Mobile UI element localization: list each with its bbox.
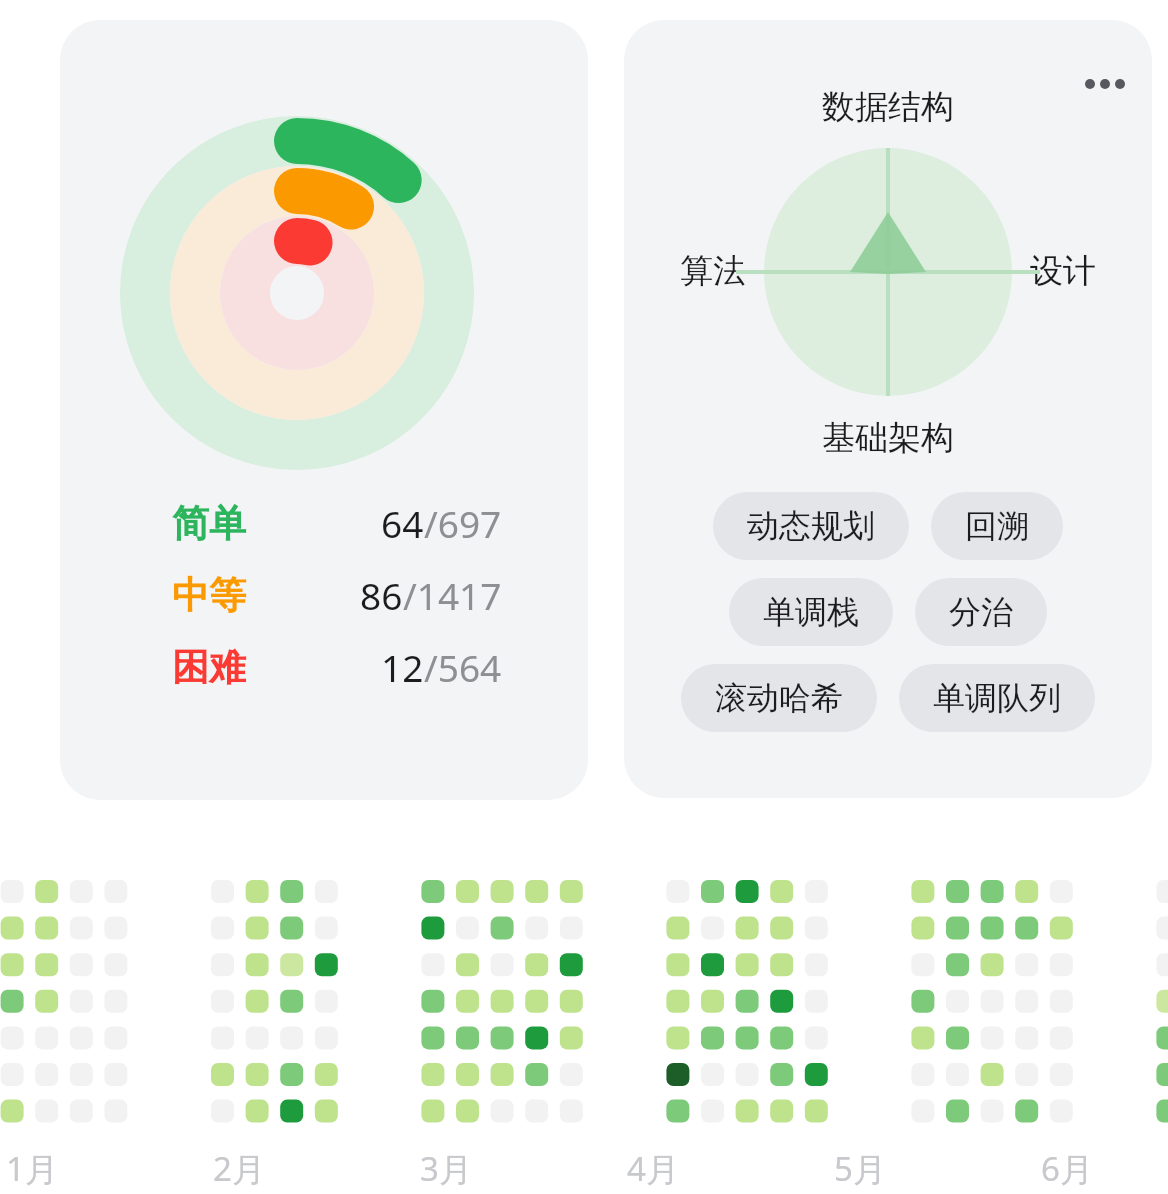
- staticText: 单调队列: [933, 678, 1061, 718]
- button[interactable]: 简单: [60, 20, 588, 800]
- staticText: 困难: [172, 644, 246, 691]
- button[interactable]: 单调栈: [729, 578, 893, 646]
- staticText: 4月: [627, 1146, 679, 1191]
- button[interactable]: More options: [1078, 66, 1132, 102]
- staticText: 12: [381, 642, 424, 692]
- staticText: 设计: [1030, 250, 1096, 292]
- staticText: /564: [424, 642, 502, 692]
- staticText: 算法: [680, 250, 746, 292]
- staticText: 5月: [834, 1146, 886, 1191]
- staticText: /697: [424, 498, 502, 548]
- staticText: 中等: [172, 572, 246, 619]
- staticText: 数据结构: [624, 86, 1152, 128]
- staticText: 简单: [172, 500, 246, 547]
- button[interactable]: 回溯: [931, 492, 1063, 560]
- button[interactable]: 中等: [172, 570, 502, 620]
- staticText: 回溯: [965, 506, 1029, 546]
- staticText: 2月: [213, 1146, 265, 1191]
- staticText: 单调栈: [763, 592, 859, 632]
- staticText: 3月: [420, 1146, 472, 1191]
- staticText: 基础架构: [624, 417, 1152, 459]
- staticText: 1月: [6, 1146, 58, 1191]
- staticText: 滚动哈希: [715, 678, 843, 718]
- staticText: 6月: [1041, 1146, 1093, 1191]
- button[interactable]: 分治: [915, 578, 1047, 646]
- staticText: 86: [360, 570, 403, 620]
- staticText: 动态规划: [747, 506, 875, 546]
- staticText: /1417: [403, 570, 502, 620]
- staticText: 分治: [949, 592, 1013, 632]
- button[interactable]: 单调队列: [899, 664, 1095, 732]
- button[interactable]: 滚动哈希: [681, 664, 877, 732]
- button[interactable]: 简单: [172, 498, 502, 548]
- button[interactable]: 困难: [172, 642, 502, 692]
- button[interactable]: 动态规划: [713, 492, 909, 560]
- staticText: 64: [381, 498, 424, 548]
